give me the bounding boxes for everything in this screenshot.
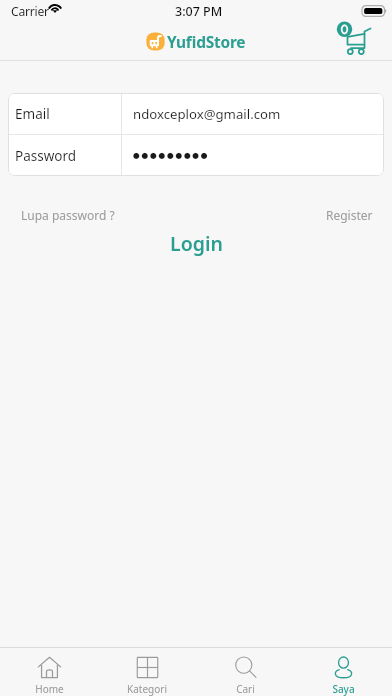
staticText: Home bbox=[35, 682, 64, 696]
button[interactable]: Register bbox=[326, 207, 392, 223]
staticText: Login bbox=[170, 230, 223, 257]
staticText: Kategori bbox=[127, 682, 167, 696]
staticText: YufidStore bbox=[167, 31, 246, 52]
button[interactable]: Lupa password ? bbox=[0, 207, 115, 223]
button[interactable]: Saya bbox=[294, 648, 392, 696]
staticText: Email bbox=[15, 105, 50, 123]
staticText: Lupa password ? bbox=[21, 207, 115, 223]
staticText: Register bbox=[326, 207, 373, 223]
button[interactable]: Cart bbox=[333, 22, 371, 61]
staticText: Saya bbox=[332, 682, 355, 696]
button[interactable]: Cari bbox=[196, 648, 294, 696]
staticText: ndoxceplox@gmail.com bbox=[133, 105, 281, 123]
button[interactable]: Login bbox=[148, 226, 245, 261]
staticText: 3:07 PM bbox=[175, 3, 223, 20]
staticText: ●●●●●●●●● bbox=[133, 151, 210, 160]
staticText: Carrier bbox=[11, 3, 49, 20]
staticText: Password bbox=[15, 147, 77, 165]
button[interactable]: Home bbox=[0, 648, 98, 696]
staticText: Cari bbox=[236, 682, 255, 696]
button[interactable]: Kategori bbox=[98, 648, 196, 696]
